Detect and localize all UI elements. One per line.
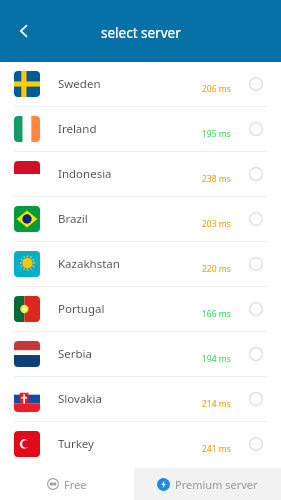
staticText: Turkey	[58, 436, 94, 452]
button[interactable]: Kazakhstan	[0, 242, 281, 286]
staticText: 195 ms	[202, 128, 231, 140]
button[interactable]: Select Portugal	[245, 298, 267, 320]
staticText: Kazakhstan	[58, 256, 120, 272]
staticText: 206 ms	[202, 83, 231, 95]
button[interactable]: Portugal	[0, 287, 281, 331]
button[interactable]: Select Slovakia	[245, 388, 267, 410]
staticText: Free	[64, 477, 87, 492]
button[interactable]: Serbia	[0, 332, 281, 376]
button[interactable]: Sweden	[0, 62, 281, 106]
button[interactable]: Free	[0, 468, 134, 500]
staticText: select server	[101, 24, 181, 42]
button[interactable]: Premium server	[134, 468, 281, 500]
staticText: Indonesia	[58, 166, 112, 182]
button[interactable]: Back	[4, 11, 44, 51]
button[interactable]: Select Turkey	[245, 433, 267, 455]
button[interactable]: Brazil	[0, 197, 281, 241]
staticText: 166 ms	[202, 308, 231, 320]
staticText: Serbia	[58, 346, 93, 362]
button[interactable]: Select Sweden	[245, 73, 267, 95]
button[interactable]: Select Indonesia	[245, 163, 267, 185]
button[interactable]: Ireland	[0, 107, 281, 151]
staticText: 220 ms	[202, 263, 231, 275]
staticText: 241 ms	[202, 443, 231, 455]
button[interactable]: Select Brazil	[245, 208, 267, 230]
staticText: 214 ms	[202, 398, 231, 410]
staticText: Portugal	[58, 301, 105, 317]
button[interactable]: Select Serbia	[245, 343, 267, 365]
staticText: Ireland	[58, 121, 97, 137]
button[interactable]: Select Kazakhstan	[245, 253, 267, 275]
staticText: Premium server	[175, 477, 258, 492]
staticText: Brazil	[58, 211, 88, 227]
staticText: Sweden	[58, 76, 101, 92]
button[interactable]: Select Ireland	[245, 118, 267, 140]
staticText: 203 ms	[202, 218, 231, 230]
button[interactable]: Slovakia	[0, 377, 281, 421]
staticText: 194 ms	[202, 353, 231, 365]
button[interactable]: Turkey	[0, 422, 281, 466]
staticText: Slovakia	[58, 391, 102, 407]
staticText: 238 ms	[202, 173, 231, 185]
button[interactable]: Indonesia	[0, 152, 281, 196]
